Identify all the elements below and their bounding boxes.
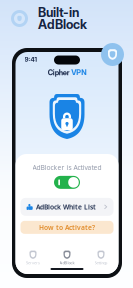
staticText: AdBlock [38,17,87,32]
staticText: 9:41 [24,56,36,63]
staticText: Servers [26,260,40,265]
staticText: AdBlocker is Activated [32,163,101,172]
button[interactable]: Settings [84,248,118,268]
staticText: How to Activate? [39,223,95,232]
button[interactable]: How to Activate? [20,221,113,234]
staticText: VPN [71,68,86,77]
button[interactable]: AdBlock White List [20,198,113,216]
staticText: AdBlock [59,260,74,265]
staticText: Settings [94,260,107,265]
staticText: Cipher [48,68,70,77]
button[interactable]: AdBlock [50,248,84,268]
button[interactable]: Servers [16,248,50,268]
staticText: Built-in [38,5,79,20]
staticText: AdBlock White List [36,202,96,211]
